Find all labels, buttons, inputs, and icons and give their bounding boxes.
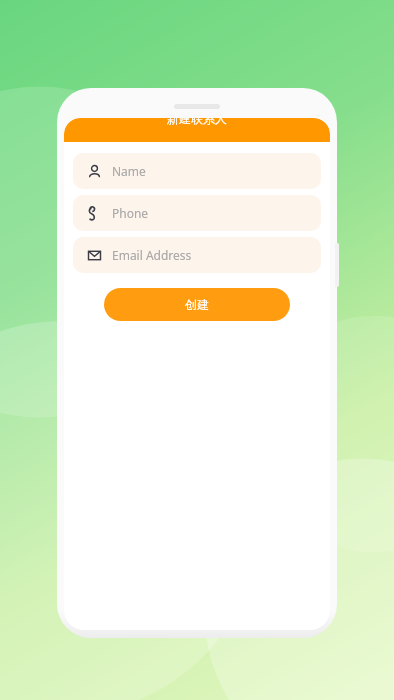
button[interactable]: Phone — [73, 195, 321, 231]
staticText: Phone — [112, 205, 149, 221]
staticText: 创建 — [185, 297, 209, 312]
staticText: Email Address — [112, 247, 192, 263]
button[interactable]: Name — [73, 153, 321, 189]
button[interactable]: 创建 — [104, 288, 290, 321]
button[interactable]: Email Address — [73, 237, 321, 273]
staticText: Name — [112, 163, 146, 179]
staticText: 新建联系人 — [167, 118, 227, 126]
